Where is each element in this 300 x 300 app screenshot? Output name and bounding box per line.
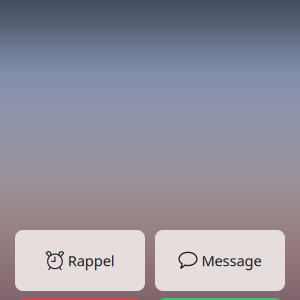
staticText: Message — [201, 251, 261, 270]
button[interactable]: Accept — [155, 298, 285, 300]
button[interactable]: Rappel — [15, 230, 145, 291]
staticText: Rappel — [68, 251, 115, 270]
button[interactable]: Decline — [15, 298, 145, 300]
button[interactable]: Message — [155, 230, 285, 291]
